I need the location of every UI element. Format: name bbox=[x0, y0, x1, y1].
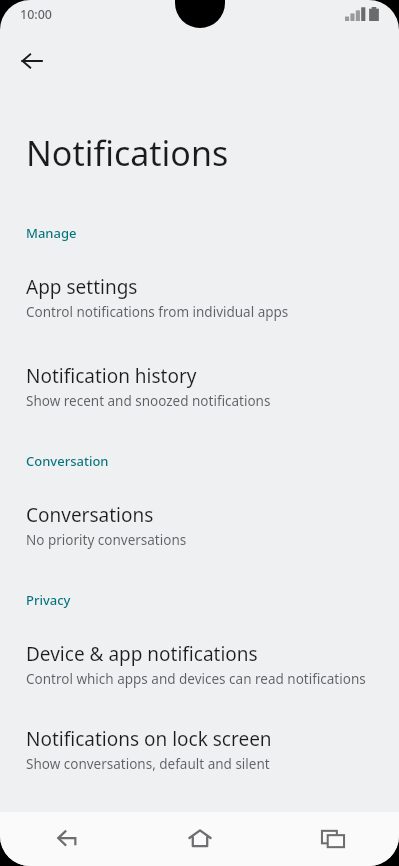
staticText: Privacy bbox=[26, 591, 71, 609]
button[interactable]: Recent apps bbox=[266, 812, 399, 866]
button[interactable]: App settings bbox=[0, 268, 399, 327]
staticText: Manage bbox=[26, 224, 77, 242]
staticText: Device & app notifications bbox=[26, 641, 258, 667]
staticText: Control notifications from individual ap… bbox=[26, 303, 289, 321]
staticText: Show recent and snoozed notifications bbox=[26, 392, 271, 410]
staticText: 10:00 bbox=[20, 6, 53, 23]
staticText: Conversation bbox=[26, 452, 109, 470]
button[interactable]: Notification history bbox=[0, 357, 399, 416]
button[interactable]: Conversations bbox=[0, 496, 399, 555]
staticText: Conversations bbox=[26, 502, 154, 528]
staticText: Control which apps and devices can read … bbox=[26, 670, 366, 688]
staticText: No priority conversations bbox=[26, 531, 187, 549]
button[interactable]: Back bbox=[10, 39, 54, 83]
button[interactable]: Home bbox=[133, 812, 266, 866]
staticText: Notifications on lock screen bbox=[26, 726, 272, 752]
button[interactable]: Notifications on lock screen bbox=[0, 720, 399, 779]
button[interactable]: Device & app notifications bbox=[0, 635, 399, 694]
staticText: Notifications bbox=[26, 130, 229, 176]
staticText: Notification history bbox=[26, 363, 197, 389]
button[interactable]: Back bbox=[0, 812, 133, 866]
staticText: App settings bbox=[26, 274, 138, 300]
staticText: Show conversations, default and silent bbox=[26, 755, 270, 773]
